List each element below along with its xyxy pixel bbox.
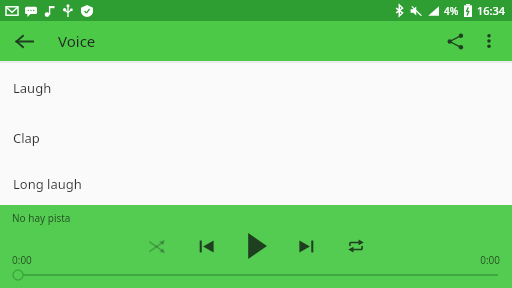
staticText: Long laugh xyxy=(13,175,82,193)
button[interactable]: Long laugh xyxy=(0,163,512,205)
staticText: Voice xyxy=(58,31,96,51)
button[interactable]: Previous xyxy=(189,229,223,263)
staticText: 16:34 xyxy=(477,3,506,18)
button[interactable]: Shuffle xyxy=(139,229,173,263)
staticText: 4% xyxy=(444,4,459,18)
button[interactable]: Next xyxy=(289,229,323,263)
button[interactable]: Back xyxy=(8,25,40,57)
button[interactable]: Clap xyxy=(0,113,512,163)
staticText: 0:00 xyxy=(480,253,500,267)
button[interactable]: Share xyxy=(438,24,472,58)
staticText: 0:00 xyxy=(12,253,32,267)
staticText: Laugh xyxy=(13,79,52,97)
staticText: Clap xyxy=(13,129,40,147)
button[interactable]: Laugh xyxy=(0,63,512,113)
button[interactable]: Repeat xyxy=(339,229,373,263)
button[interactable]: More options xyxy=(472,24,506,58)
button[interactable]: Play xyxy=(239,229,273,263)
staticText: No hay pista xyxy=(12,211,71,225)
